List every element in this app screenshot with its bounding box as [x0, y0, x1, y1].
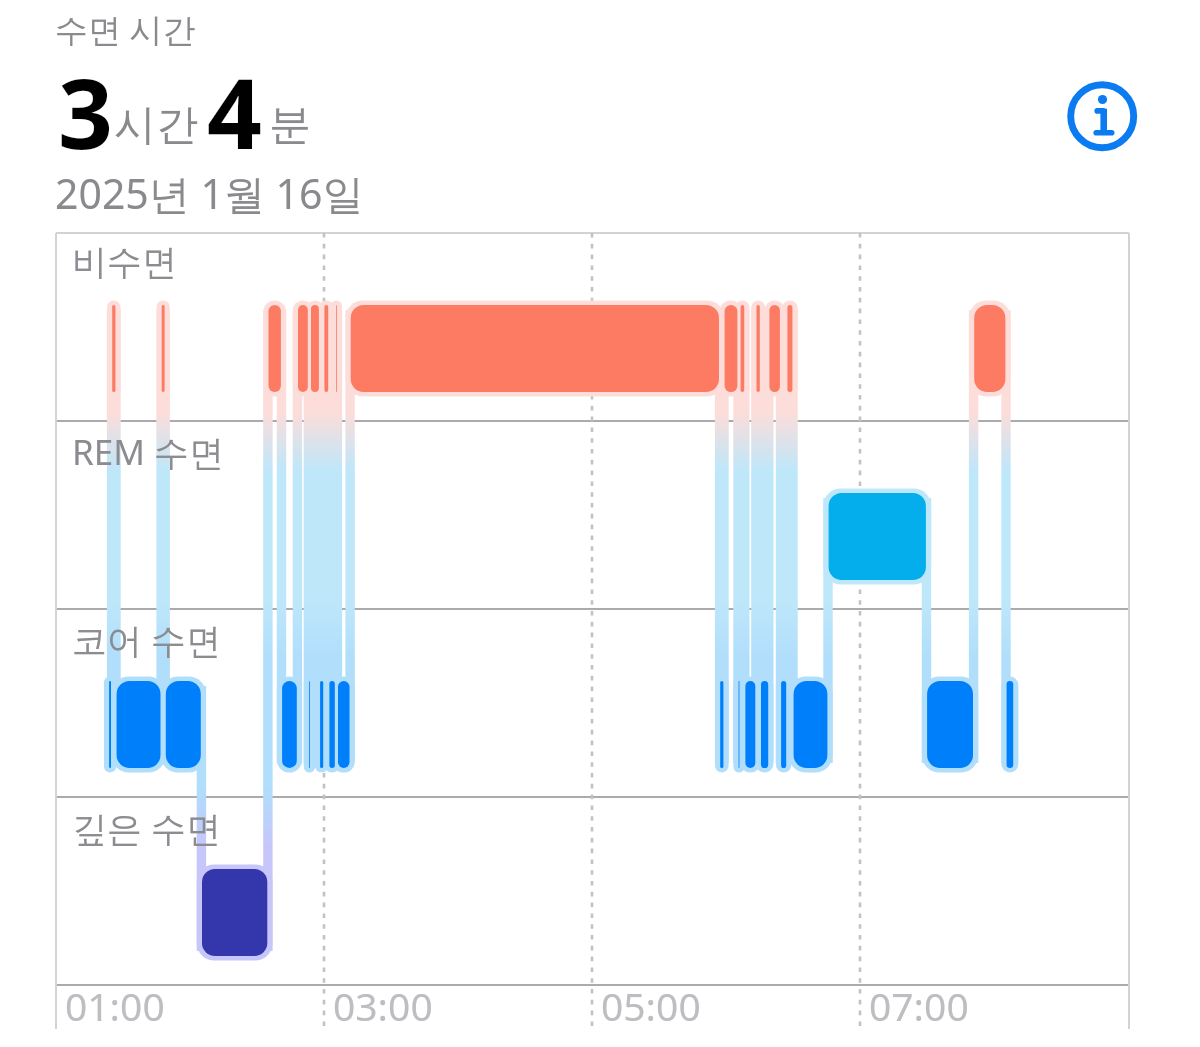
staticText: 비수면: [72, 240, 177, 284]
staticText: 3: [58, 46, 113, 177]
staticText: 2025년 1월 16일: [55, 165, 364, 221]
staticText: 수면 시간: [55, 7, 196, 52]
staticText: 05:00: [601, 979, 701, 1032]
staticText: 분: [269, 99, 311, 152]
staticText: 01:00: [65, 979, 165, 1032]
button[interactable]: 정보: [1062, 76, 1142, 156]
staticText: 03:00: [333, 979, 433, 1032]
staticText: 4: [207, 46, 262, 177]
staticText: 코어 수면: [72, 616, 222, 664]
staticText: 시간: [114, 99, 198, 152]
staticText: 07:00: [869, 979, 969, 1032]
staticText: REM 수면: [72, 428, 225, 476]
staticText: 깊은 수면: [72, 804, 222, 852]
